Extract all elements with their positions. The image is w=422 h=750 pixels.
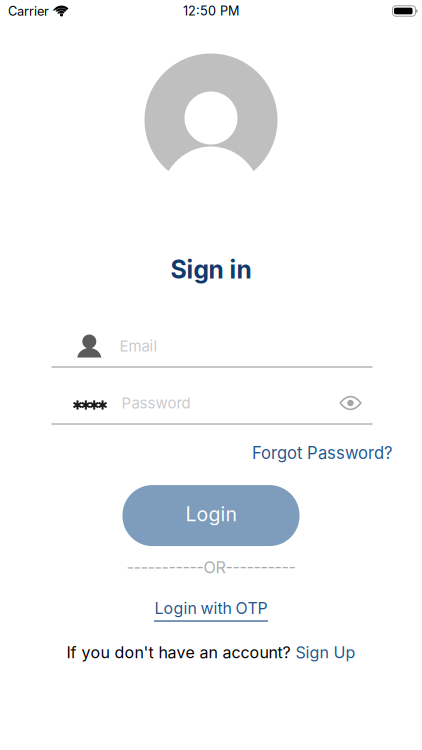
staticText: If you don't have an account?: [66, 643, 290, 662]
staticText: Sign in: [170, 254, 251, 284]
button[interactable]: Forgot Password?: [252, 443, 392, 463]
staticText: Login: [185, 502, 236, 526]
staticText: -----------OR----------: [126, 558, 295, 577]
staticText: Sign Up: [295, 643, 355, 662]
staticText: 12:50 PM: [183, 3, 239, 19]
button[interactable]: Login with OTP: [154, 599, 268, 622]
staticText: Login with OTP: [154, 599, 267, 618]
staticText: Carrier: [8, 3, 49, 19]
staticText: Email: [119, 337, 157, 355]
button[interactable]: Sign Up: [295, 643, 355, 662]
button[interactable]: Login: [122, 485, 299, 546]
button[interactable]: Show password: [339, 396, 361, 410]
staticText: Forgot Password?: [252, 443, 392, 463]
staticText: Password: [121, 394, 190, 412]
